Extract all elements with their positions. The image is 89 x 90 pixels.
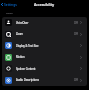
staticText: VoiceOver <box>16 21 29 25</box>
staticText: Accessibility <box>34 2 55 7</box>
staticText: Motion <box>16 55 25 59</box>
button[interactable]: Motion <box>2 51 87 63</box>
button[interactable]: VoiceOver <box>2 17 87 28</box>
staticText: Display & Text Size <box>16 44 39 48</box>
staticText: Off <box>74 32 78 36</box>
staticText: Settings <box>4 2 17 7</box>
button[interactable]: Back to Settings <box>0 0 19 9</box>
staticText: Zoom <box>16 32 24 36</box>
staticText: Audio Descriptions <box>16 78 39 82</box>
staticText: VISION <box>6 12 14 15</box>
button[interactable]: Audio Descriptions <box>2 74 87 86</box>
staticText: Off <box>74 21 78 25</box>
button[interactable]: Spoken Content <box>2 63 87 74</box>
staticText: Off <box>74 78 78 82</box>
staticText: Spoken Content <box>16 67 36 71</box>
button[interactable]: Display & Text Size <box>2 40 87 51</box>
button[interactable]: Zoom <box>2 28 87 40</box>
